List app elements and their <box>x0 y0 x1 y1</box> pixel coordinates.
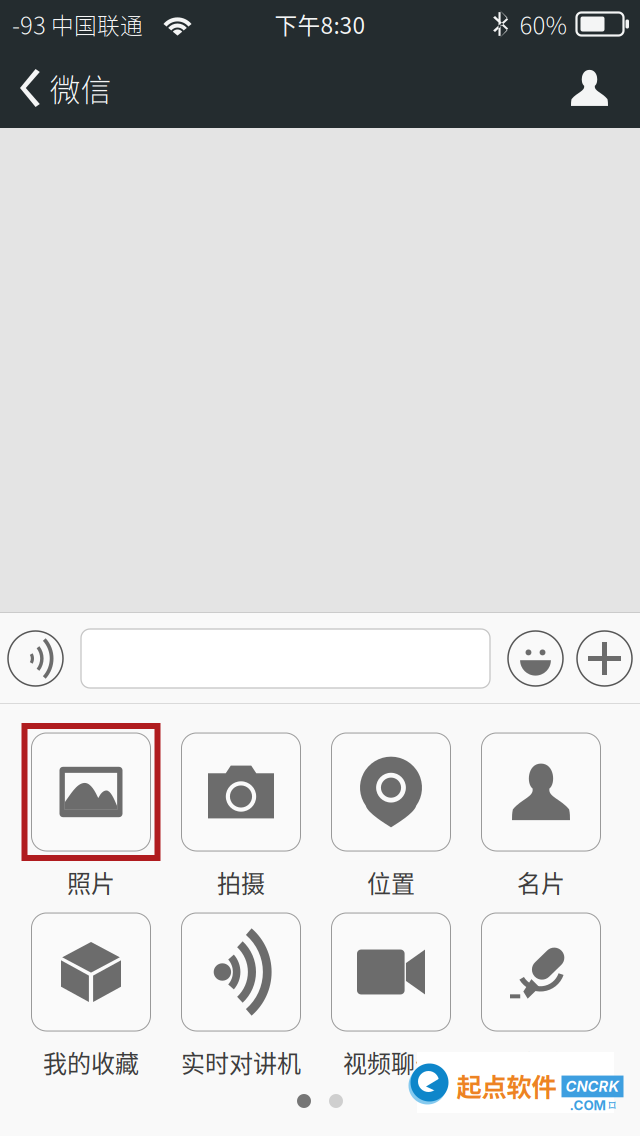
staticText: -93 <box>12 7 46 41</box>
button[interactable]: Hold to talk <box>8 631 63 686</box>
button[interactable]: 位置 <box>316 726 466 906</box>
staticText: 起点软件 <box>456 1067 556 1104</box>
button[interactable]: Emoji <box>508 631 563 686</box>
staticText: 名片 <box>517 865 565 899</box>
staticText: 拍摄 <box>217 865 265 899</box>
staticText: 我的收藏 <box>43 1045 139 1079</box>
staticText: 照片 <box>67 865 115 899</box>
staticText: .COM ⌑ <box>569 1097 615 1113</box>
staticText: CNCRK <box>565 1078 619 1095</box>
button[interactable]: Contact info <box>547 48 640 128</box>
button[interactable]: 微信 <box>0 48 128 128</box>
button[interactable]: 语音输入 <box>466 906 616 1086</box>
staticText: 视频聊天 <box>343 1045 439 1079</box>
staticText: 位置 <box>367 865 415 899</box>
staticText: 语音输入 <box>493 1045 589 1079</box>
staticText: 微信 <box>50 66 112 110</box>
staticText: 下午8:30 <box>274 8 365 40</box>
button[interactable]: 名片 <box>466 726 616 906</box>
staticText: 实时对讲机 <box>181 1045 301 1079</box>
button[interactable]: 拍摄 <box>166 726 316 906</box>
button[interactable]: More <box>577 631 632 686</box>
staticText: 中国联通 <box>46 8 143 40</box>
button[interactable]: 视频聊天 <box>316 906 466 1086</box>
staticText: 60% <box>519 7 567 41</box>
button[interactable]: 我的收藏 <box>16 906 166 1086</box>
button[interactable]: 照片 <box>16 726 166 906</box>
button[interactable]: 实时对讲机 <box>166 906 316 1086</box>
